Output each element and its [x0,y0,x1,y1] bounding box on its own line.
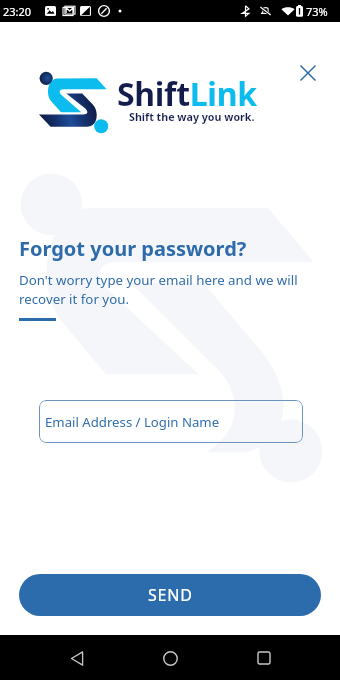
staticText: Email Address / Login Name [45,413,220,431]
staticText: Don't worry type your email here and we … [19,271,298,308]
button[interactable]: SEND [19,574,321,616]
button[interactable]: Back [60,641,94,675]
button[interactable]: Close [296,61,320,85]
button[interactable]: Recents [247,641,281,675]
button[interactable]: Home [153,641,187,675]
staticText: 23:20 [3,4,32,19]
button[interactable]: Email Address / Login Name [39,400,303,443]
staticText: Shift the way you work. [129,110,255,125]
staticText: ShiftLink [117,72,257,116]
staticText: Forgot your password? [19,235,247,262]
staticText: SEND [148,584,193,606]
staticText: 73% [306,4,328,19]
